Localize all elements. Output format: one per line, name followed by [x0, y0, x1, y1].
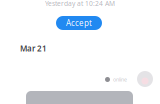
staticText: Yesterday at 10:24 AM [45, 0, 115, 8]
staticText: Mar 21 [20, 43, 47, 54]
button[interactable]: Accept [56, 16, 102, 30]
staticText: Accept [66, 18, 92, 28]
staticText: online [113, 76, 127, 83]
button[interactable]: Profile [137, 71, 153, 87]
